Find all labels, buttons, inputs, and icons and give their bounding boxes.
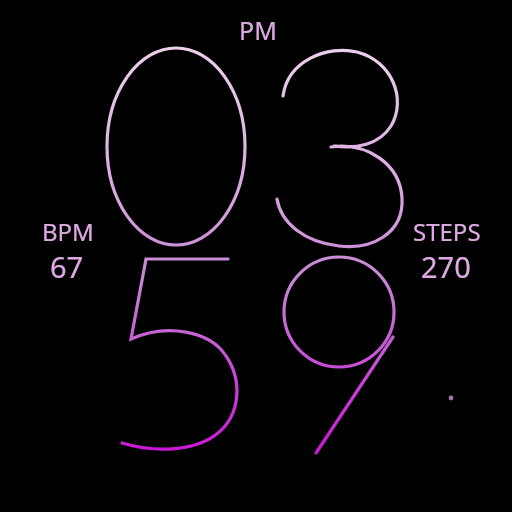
button[interactable]: Digital watch face showing 03:59 PM	[0, 0, 512, 512]
